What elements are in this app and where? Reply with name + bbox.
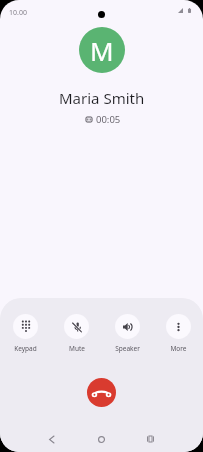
button[interactable]: End call xyxy=(87,378,116,407)
button[interactable]: Keypad xyxy=(0,314,51,353)
staticText: Maria Smith xyxy=(59,88,145,108)
button[interactable]: Mute xyxy=(51,314,102,353)
button[interactable]: More xyxy=(153,314,203,353)
button[interactable]: Home xyxy=(88,426,114,452)
staticText: More xyxy=(170,344,187,353)
staticText: Mute xyxy=(69,344,85,353)
button[interactable]: Back xyxy=(38,426,64,452)
staticText: 00:05 xyxy=(96,113,121,126)
staticText: M xyxy=(90,33,114,68)
staticText: Speaker xyxy=(115,344,140,353)
staticText: Keypad xyxy=(14,344,37,353)
button[interactable]: Recents xyxy=(137,426,163,452)
staticText: 10.00 xyxy=(9,8,27,18)
button[interactable]: Speaker xyxy=(102,314,153,353)
